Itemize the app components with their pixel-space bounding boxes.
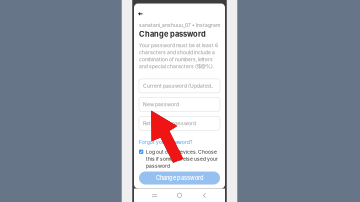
staticText: Your password must be at least 6 charact… (139, 42, 218, 69)
staticText: sanatani_anshuuu_07 • Instagram (139, 22, 220, 28)
staticText: Log out of all devices. Choose this if s… (146, 149, 218, 169)
button[interactable]: Change password (139, 171, 220, 184)
button[interactable]: Back (134, 3, 148, 22)
staticText: Change password (139, 29, 206, 38)
button[interactable]: Home (175, 191, 184, 200)
button[interactable]: Back (200, 191, 209, 200)
button[interactable]: Recents (150, 191, 159, 200)
button[interactable]: Forgot your password? (134, 130, 192, 146)
staticText: Current password (Updated.. (143, 83, 213, 89)
staticText: Retype new password (143, 120, 196, 126)
staticText: New password (143, 101, 179, 107)
staticText: Forgot your password? (139, 139, 192, 145)
staticText: Change password (156, 175, 203, 181)
